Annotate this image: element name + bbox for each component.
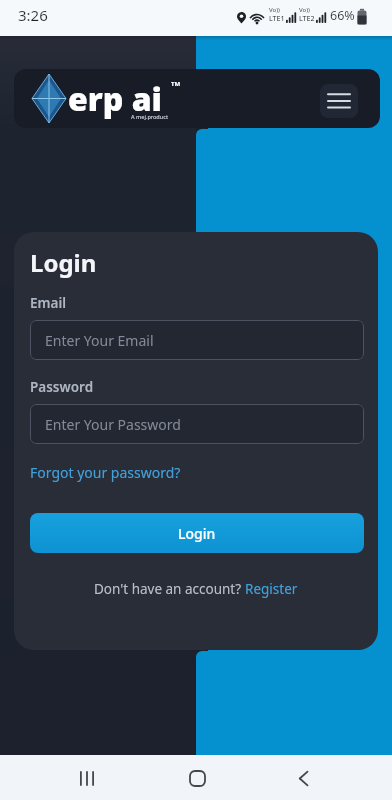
staticText: 3:26 xyxy=(18,5,48,25)
staticText: Email xyxy=(30,294,67,312)
staticText: Vo)) xyxy=(269,6,280,14)
button[interactable] xyxy=(286,761,320,795)
staticText: Vo)) xyxy=(299,6,310,14)
staticText: A mej.product xyxy=(131,113,169,120)
staticText: Password xyxy=(30,378,94,396)
staticText: Forgot your password? xyxy=(30,463,181,482)
staticText: Don't have an account? xyxy=(94,580,245,598)
button[interactable]: Enter Your Password xyxy=(30,404,364,444)
staticText: Login xyxy=(178,524,216,543)
button[interactable] xyxy=(320,84,358,118)
staticText: Register xyxy=(245,580,298,598)
button[interactable]: Forgot your password? xyxy=(30,463,181,482)
staticText: erp ai xyxy=(68,77,163,121)
staticText: LTE1 xyxy=(269,14,285,24)
button[interactable]: Login xyxy=(30,513,364,553)
staticText: Enter Your Password xyxy=(45,415,181,434)
button[interactable]: Register xyxy=(245,580,298,598)
button[interactable] xyxy=(180,761,214,795)
button[interactable] xyxy=(70,761,104,795)
button[interactable]: Enter Your Email xyxy=(30,320,364,360)
staticText: Login xyxy=(30,246,97,279)
staticText: Enter Your Email xyxy=(45,331,154,350)
staticText: 66% xyxy=(330,7,355,24)
staticText: LTE2 xyxy=(299,14,315,24)
staticText: TM xyxy=(171,80,181,88)
